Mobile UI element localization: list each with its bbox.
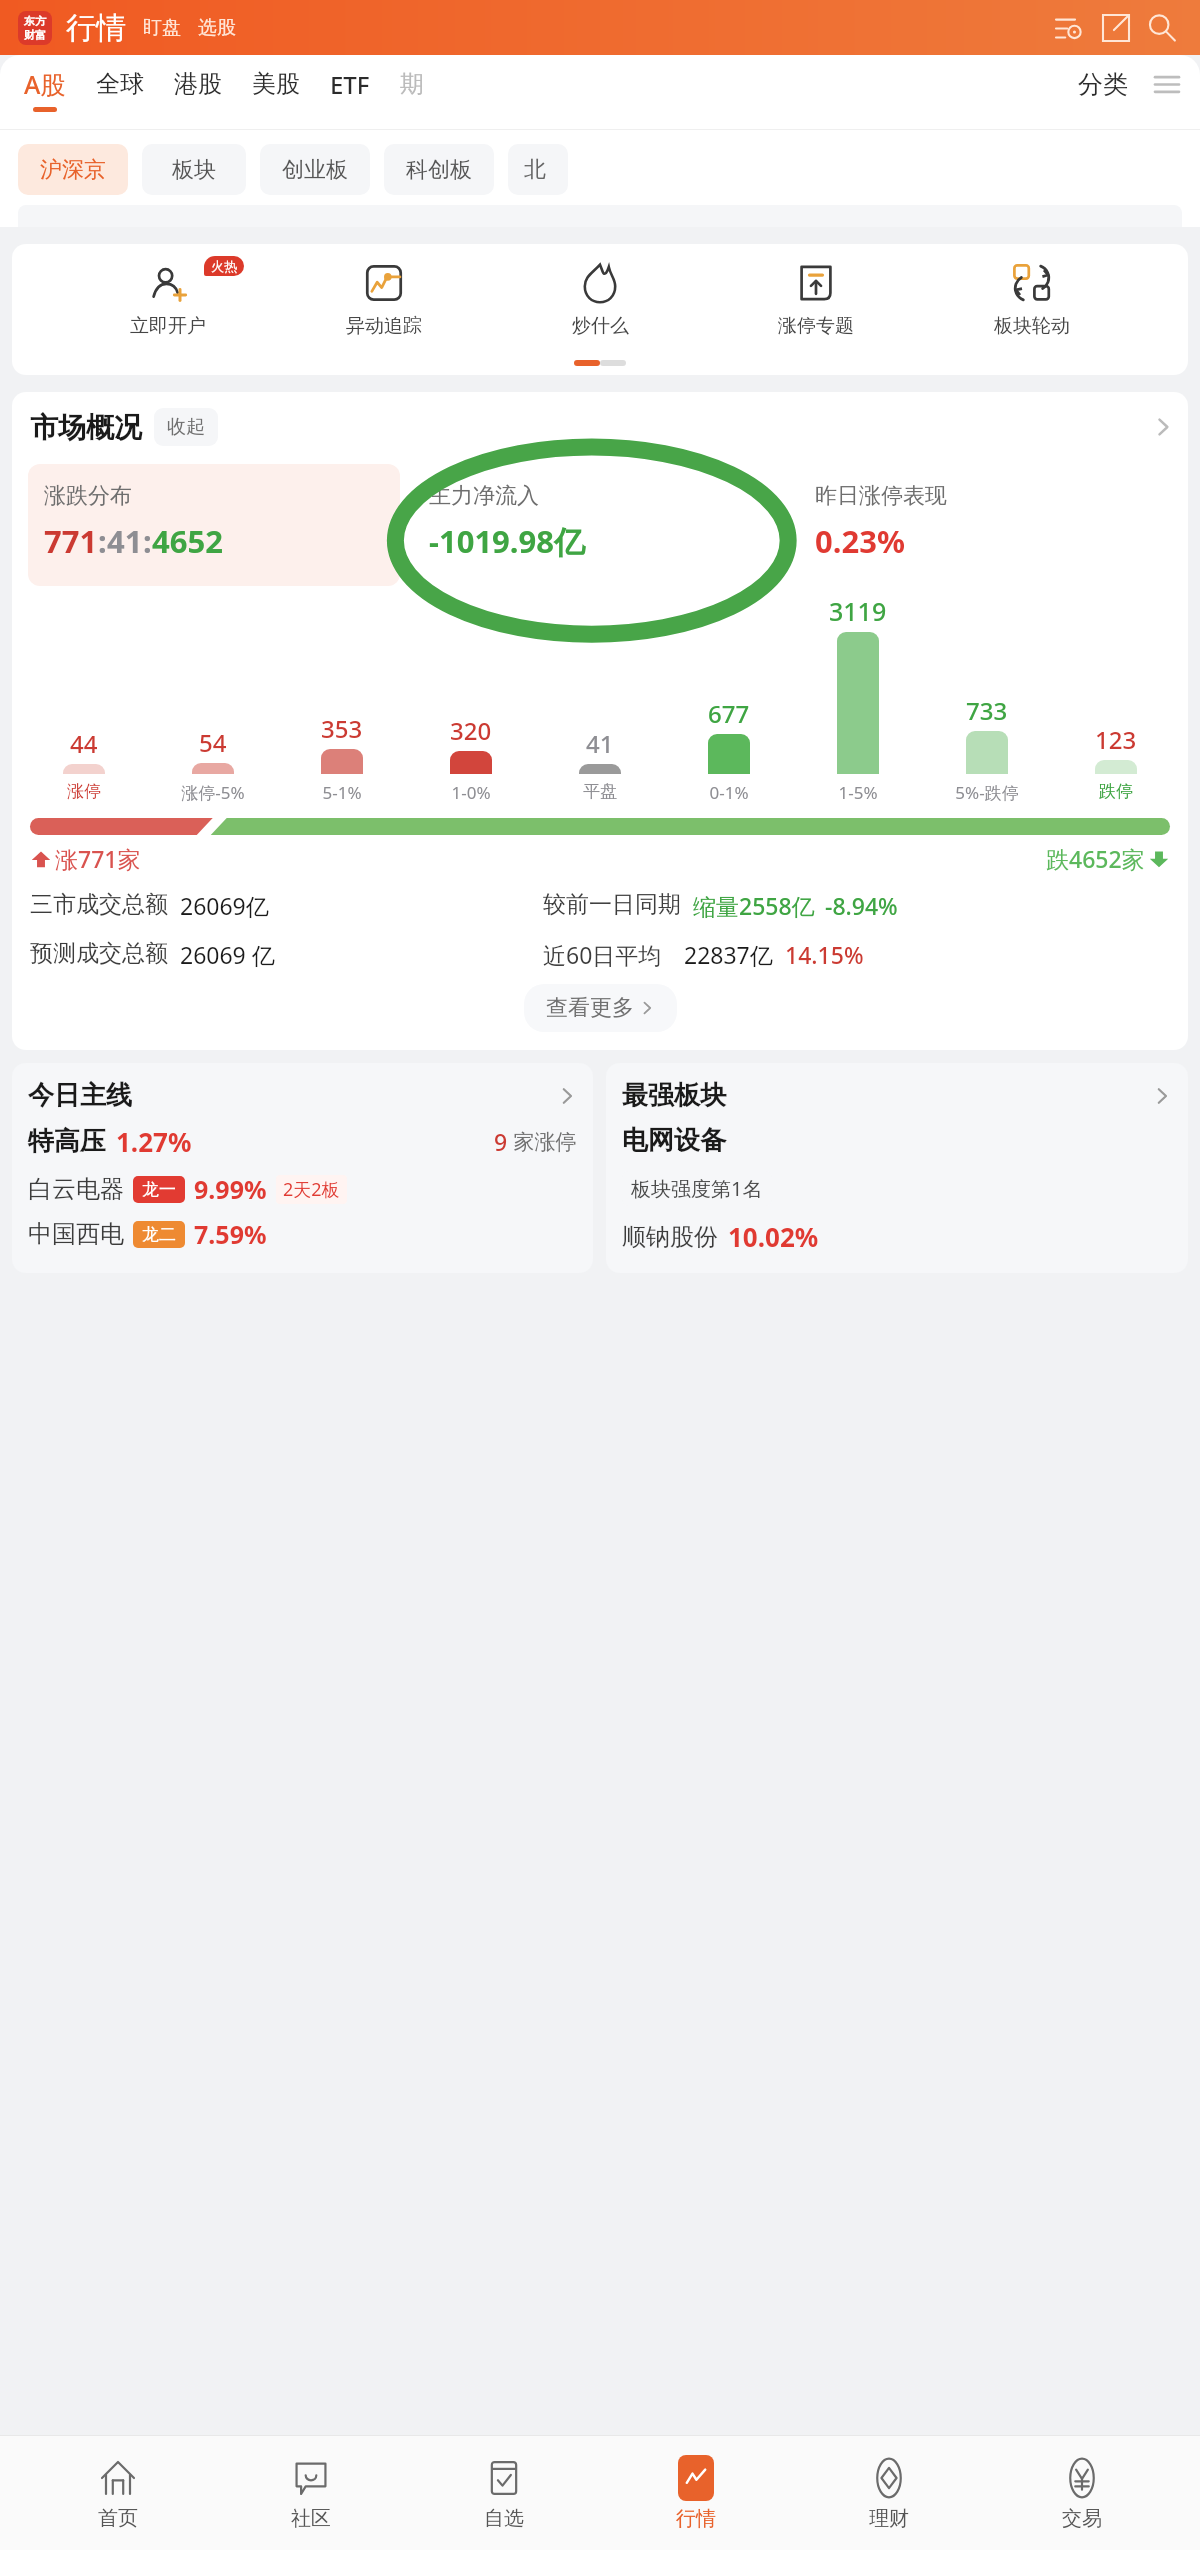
button[interactable]: 分类 — [1078, 69, 1128, 111]
button[interactable]: 美股 — [252, 69, 300, 110]
staticText: 理财 — [869, 2506, 909, 2531]
staticText: 5%-跌停 — [955, 781, 1019, 804]
staticText: 顺钠股份 — [622, 1222, 718, 1252]
button[interactable]: 东方 — [18, 11, 52, 45]
staticText: 沪深京 — [40, 156, 106, 184]
button[interactable]: 首页 — [43, 2436, 193, 2550]
staticText: 0-1% — [709, 781, 749, 804]
staticText: 涨停专题 — [778, 314, 854, 338]
staticText: 涨停 — [67, 781, 101, 802]
button[interactable]: 收起 — [154, 408, 218, 446]
button[interactable]: 火热 — [108, 258, 228, 338]
button[interactable]: 最强板块 — [606, 1063, 1188, 1273]
staticText: 22837亿 — [684, 939, 773, 970]
button[interactable]: 社区 — [236, 2436, 386, 2550]
button[interactable]: 主力净流入 — [413, 464, 786, 586]
button[interactable]: 44 — [20, 727, 148, 774]
button[interactable]: Menu — [1150, 73, 1184, 107]
button[interactable]: 677 — [664, 697, 793, 774]
button[interactable]: 交易 — [1007, 2436, 1157, 2550]
button[interactable]: 涨跌分布 — [28, 464, 400, 586]
button[interactable]: 涨停专题 — [756, 258, 876, 338]
button[interactable]: 理财 — [814, 2436, 964, 2550]
button[interactable]: 353 — [277, 712, 406, 774]
staticText: 123 — [1095, 723, 1137, 756]
button[interactable]: 港股 — [174, 69, 222, 110]
staticText: 查看更多 — [546, 994, 634, 1022]
button[interactable]: 选股 — [198, 16, 236, 40]
staticText: 54 — [199, 726, 227, 759]
staticText: 涨跌分布 — [44, 482, 132, 510]
staticText: 预测成交总额 — [30, 939, 168, 968]
staticText: 首页 — [98, 2506, 138, 2531]
button[interactable]: 沪深京 — [18, 144, 128, 195]
staticText: 市场概况 — [30, 410, 142, 445]
staticText: 龙一 — [142, 1179, 176, 1200]
staticText: : — [98, 520, 107, 562]
staticText: 火热 — [211, 258, 237, 274]
button[interactable]: 54 — [148, 726, 277, 774]
staticText: 跌停 — [1099, 781, 1133, 802]
button[interactable]: 市场概况 — [30, 408, 1174, 446]
staticText: 板块轮动 — [994, 314, 1070, 338]
staticText: 板块强度第1名 — [631, 1175, 763, 1202]
staticText: 3119 — [829, 594, 887, 628]
staticText: 733 — [966, 694, 1008, 727]
button[interactable]: 科创板 — [384, 144, 494, 195]
button[interactable]: A股 — [24, 67, 66, 112]
staticText: : — [143, 520, 152, 562]
staticText: 主力净流入 — [429, 482, 539, 510]
staticText: 科创板 — [406, 156, 472, 184]
staticText: 涨771家 — [55, 843, 141, 874]
staticText: 1-5% — [838, 781, 878, 804]
staticText: 0.23% — [815, 520, 905, 562]
staticText: 26069亿 — [180, 890, 269, 921]
button[interactable]: 3119 — [793, 594, 922, 774]
staticText: 771 — [44, 520, 98, 562]
button[interactable]: 今日主线 — [12, 1063, 593, 1273]
staticText: 41 — [107, 520, 143, 562]
staticText: 行情 — [676, 2506, 716, 2531]
staticText: 三市成交总额 — [30, 890, 168, 919]
staticText: 期 — [400, 69, 424, 99]
button[interactable]: Share — [1096, 8, 1136, 48]
staticText: 平盘 — [583, 781, 617, 802]
button[interactable]: 自选 — [429, 2436, 579, 2550]
button[interactable]: 创业板 — [260, 144, 370, 195]
staticText: 特高压 — [28, 1125, 106, 1158]
staticText: 353 — [321, 712, 363, 745]
staticText: 4652 — [152, 520, 223, 562]
button[interactable]: ETF — [330, 68, 370, 112]
staticText: 异动追踪 — [346, 314, 422, 338]
button[interactable]: 板块 — [142, 144, 246, 195]
button[interactable]: 查看更多 — [524, 984, 677, 1032]
staticText: 收起 — [167, 415, 205, 439]
staticText: 26069 亿 — [180, 939, 275, 970]
button[interactable]: 炒什么 — [540, 258, 660, 338]
button[interactable]: 733 — [922, 694, 1051, 774]
button[interactable]: 北 — [508, 144, 568, 195]
button[interactable]: Settings list — [1050, 8, 1090, 48]
staticText: 家涨停 — [508, 1127, 577, 1156]
button[interactable]: 行情 — [66, 9, 126, 47]
button[interactable]: 盯盘 — [143, 16, 181, 40]
button[interactable]: 昨日涨停表现 — [799, 464, 1172, 586]
button[interactable]: 123 — [1051, 723, 1180, 774]
staticText: 交易 — [1062, 2506, 1102, 2531]
staticText: 社区 — [291, 2506, 331, 2531]
staticText: 677 — [708, 697, 750, 730]
button[interactable]: 行情 — [621, 2436, 771, 2550]
staticText: 立即开户 — [130, 314, 206, 338]
staticText: 今日主线 — [28, 1079, 132, 1112]
staticText: 5-1% — [322, 781, 362, 804]
button[interactable]: 41 — [535, 727, 664, 774]
staticText: -8.94% — [825, 890, 898, 921]
button[interactable]: 异动追踪 — [324, 258, 444, 338]
staticText: 最强板块 — [622, 1079, 726, 1112]
button[interactable]: Search — [1142, 8, 1182, 48]
staticText: 电网设备 — [622, 1124, 726, 1157]
button[interactable]: 320 — [406, 714, 535, 774]
button[interactable]: 全球 — [96, 69, 144, 110]
button[interactable]: 板块轮动 — [972, 258, 1092, 338]
staticText: 320 — [450, 714, 492, 747]
